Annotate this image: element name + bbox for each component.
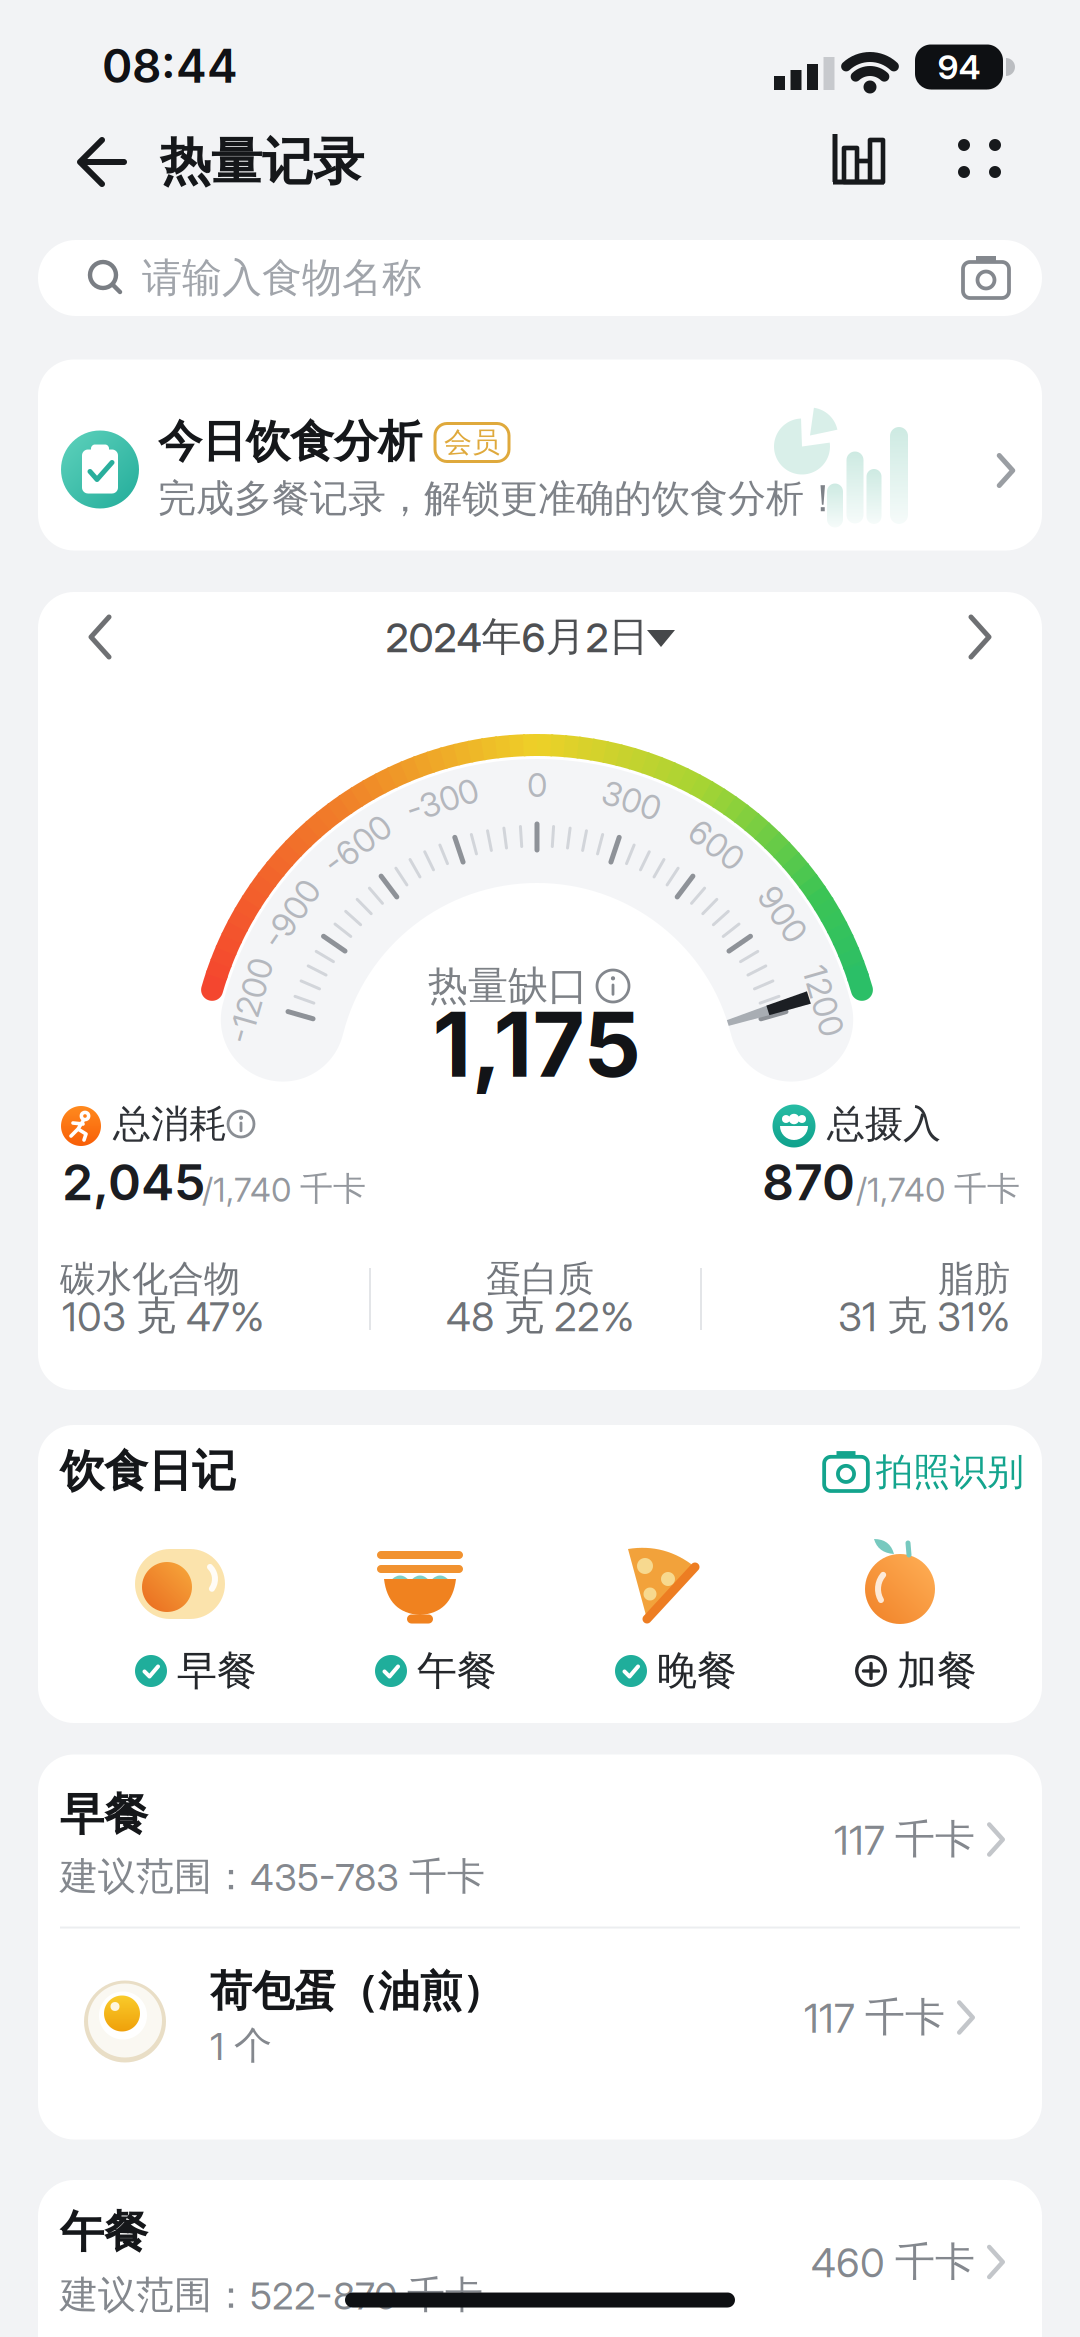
- button[interactable]: 今日饮食分析: [38, 359, 1042, 550]
- staticText: 总摄入: [827, 1101, 941, 1147]
- staticText: 1,175: [432, 991, 641, 1097]
- staticText: 完成多餐记录，解锁更准确的饮食分析！: [158, 475, 842, 522]
- staticText: 早餐: [177, 1646, 257, 1695]
- staticText: 1 个: [210, 2022, 272, 2069]
- button[interactable]: [940, 121, 1018, 197]
- staticText: 热量缺口: [428, 961, 588, 1010]
- staticText: 拍照识别: [876, 1449, 1024, 1495]
- staticText: 建议范围：522-870 千卡: [60, 2272, 483, 2318]
- staticText: /1,740 千卡: [856, 1169, 1020, 1209]
- staticText: 碳水化合物: [60, 1257, 240, 1301]
- staticText: -900: [254, 895, 329, 934]
- staticText: 300: [602, 781, 662, 820]
- button[interactable]: 早餐: [38, 1754, 1042, 1926]
- staticText: 热量记录: [160, 131, 364, 193]
- staticText: 蛋白质: [486, 1257, 594, 1301]
- staticText: 900: [753, 895, 813, 934]
- staticText: 荷包蛋（油煎）: [210, 1966, 504, 2017]
- staticText: 脂肪: [938, 1257, 1010, 1301]
- staticText: 1200: [787, 981, 859, 1020]
- button[interactable]: 午餐: [38, 2180, 1042, 2337]
- button[interactable]: [60, 597, 140, 677]
- button[interactable]: [940, 597, 1020, 677]
- staticText: -600: [320, 825, 395, 864]
- button[interactable]: [942, 240, 1030, 316]
- staticText: 600: [686, 825, 746, 864]
- staticText: 会员: [444, 425, 500, 460]
- button[interactable]: 荷包蛋（油煎）: [38, 1934, 1042, 2084]
- button[interactable]: [820, 121, 896, 197]
- button[interactable]: 早餐: [70, 1491, 290, 1711]
- staticText: 今日饮食分析: [158, 414, 422, 468]
- staticText: 请输入食物名称: [142, 253, 422, 302]
- staticText: 08:44: [102, 39, 238, 93]
- staticText: 870: [762, 1152, 855, 1211]
- staticText: 饮食日记: [60, 1444, 236, 1498]
- staticText: 48 克 22%: [446, 1291, 634, 1340]
- staticText: -300: [405, 781, 479, 820]
- staticText: 117 千卡: [834, 1815, 975, 1864]
- staticText: 建议范围：435-783 千卡: [60, 1853, 485, 1900]
- staticText: 94: [937, 47, 980, 87]
- button[interactable]: 晚餐: [550, 1491, 770, 1711]
- staticText: 早餐: [60, 1787, 148, 1841]
- staticText: 午餐: [417, 1646, 497, 1695]
- button[interactable]: 请输入食物名称: [38, 240, 1042, 316]
- button[interactable]: 加餐: [790, 1491, 1010, 1711]
- button[interactable]: [221, 1104, 261, 1144]
- staticText: 117 千卡: [804, 1993, 945, 2042]
- staticText: 午餐: [60, 2205, 148, 2259]
- staticText: /1,740 千卡: [202, 1169, 366, 1209]
- button[interactable]: [593, 966, 633, 1006]
- button[interactable]: [62, 122, 142, 202]
- staticText: 103 克 47%: [62, 1291, 264, 1340]
- staticText: 2,045: [62, 1152, 205, 1211]
- staticText: 2024年6月2日: [385, 612, 648, 661]
- staticText: 31 克 31%: [838, 1291, 1010, 1340]
- staticText: 总消耗: [113, 1101, 227, 1147]
- staticText: 0: [527, 765, 547, 804]
- button[interactable]: 午餐: [310, 1491, 530, 1711]
- staticText: -1200: [207, 981, 294, 1020]
- button[interactable]: 拍照识别: [780, 1436, 1020, 1506]
- staticText: 加餐: [897, 1646, 977, 1695]
- staticText: 晚餐: [657, 1646, 737, 1695]
- button[interactable]: 2024年6月2日: [347, 597, 707, 677]
- staticText: 460 千卡: [811, 2237, 975, 2286]
